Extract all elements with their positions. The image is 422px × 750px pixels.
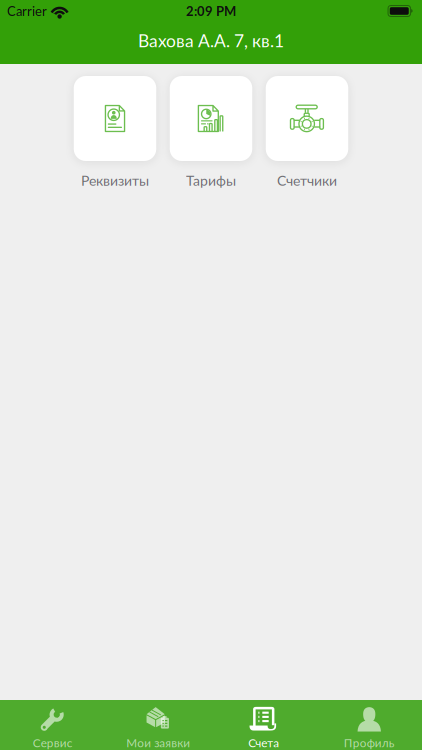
staticText: Мои заявки [126,736,190,750]
staticText: Сервис [33,736,73,750]
staticText: Счета [248,736,279,750]
staticText: Тарифы [186,172,236,189]
button[interactable]: Сервис [0,700,105,750]
button[interactable]: Тарифы [170,76,252,189]
staticText: Реквизиты [81,172,149,189]
staticText: Профиль [344,736,395,750]
button[interactable]: Профиль [316,700,422,750]
staticText: Вахова А.А. 7, кв.1 [138,30,284,51]
button[interactable]: Мои заявки [105,700,211,750]
staticText: Счетчики [277,172,337,189]
button[interactable]: Счета [211,700,316,750]
staticText: 2:09 PM [186,3,236,19]
button[interactable]: Реквизиты [74,76,156,189]
staticText: Carrier [7,3,47,19]
button[interactable]: Счетчики [266,76,348,189]
